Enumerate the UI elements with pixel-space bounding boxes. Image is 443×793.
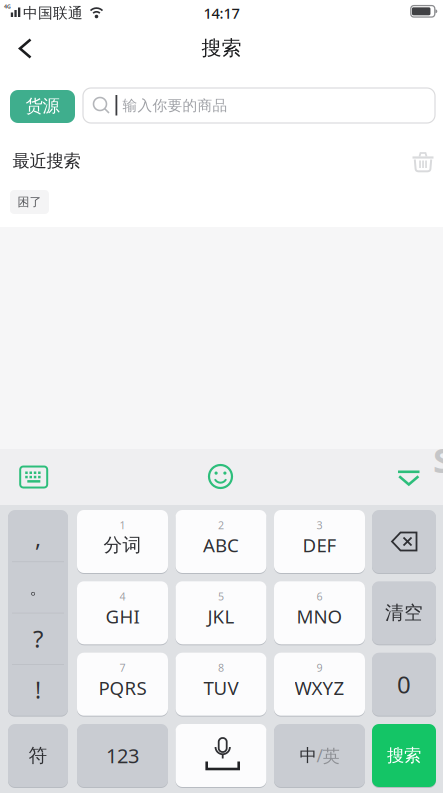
staticText: 1 — [119, 518, 125, 532]
staticText: 搜索 — [387, 745, 421, 766]
staticText: 输入你要的商品 — [122, 96, 227, 114]
staticText: GHI — [105, 604, 139, 629]
staticText: ? — [33, 623, 43, 654]
staticText: 4 — [119, 589, 125, 603]
staticText: 分词 — [103, 533, 141, 556]
staticText: 货源 — [25, 95, 59, 117]
staticText: 最近搜索 — [12, 150, 80, 172]
staticText: ! — [35, 675, 41, 705]
staticText: 困了 — [17, 195, 41, 209]
staticText: 清空 — [385, 601, 423, 624]
staticText: 123 — [106, 742, 139, 769]
staticText: 中 — [299, 745, 316, 766]
staticText: 6 — [316, 589, 322, 603]
staticText: 7 — [119, 661, 125, 675]
staticText: 2 — [218, 518, 224, 532]
staticText: PQRS — [98, 675, 146, 700]
staticText: 符 — [28, 744, 47, 767]
staticText: 14:17 — [203, 3, 239, 23]
staticText: 0 — [397, 668, 411, 700]
staticText: 4G — [4, 3, 11, 10]
staticText: 。 — [29, 577, 46, 599]
staticText: WXYZ — [294, 675, 344, 700]
staticText: TUV — [203, 675, 238, 700]
staticText: 3 — [316, 518, 322, 532]
staticText: DEF — [302, 533, 336, 557]
staticText: MNO — [296, 604, 342, 629]
staticText: ABC — [203, 533, 239, 557]
staticText: S — [433, 436, 443, 482]
staticText: 中国联通 — [23, 4, 83, 22]
staticText: 5 — [218, 589, 224, 603]
staticText: , — [35, 523, 41, 553]
staticText: JKL — [207, 604, 234, 629]
staticText: 9 — [316, 661, 322, 675]
staticText: /英 — [316, 744, 339, 767]
staticText: 8 — [218, 661, 224, 675]
staticText: 搜索 — [201, 36, 241, 60]
